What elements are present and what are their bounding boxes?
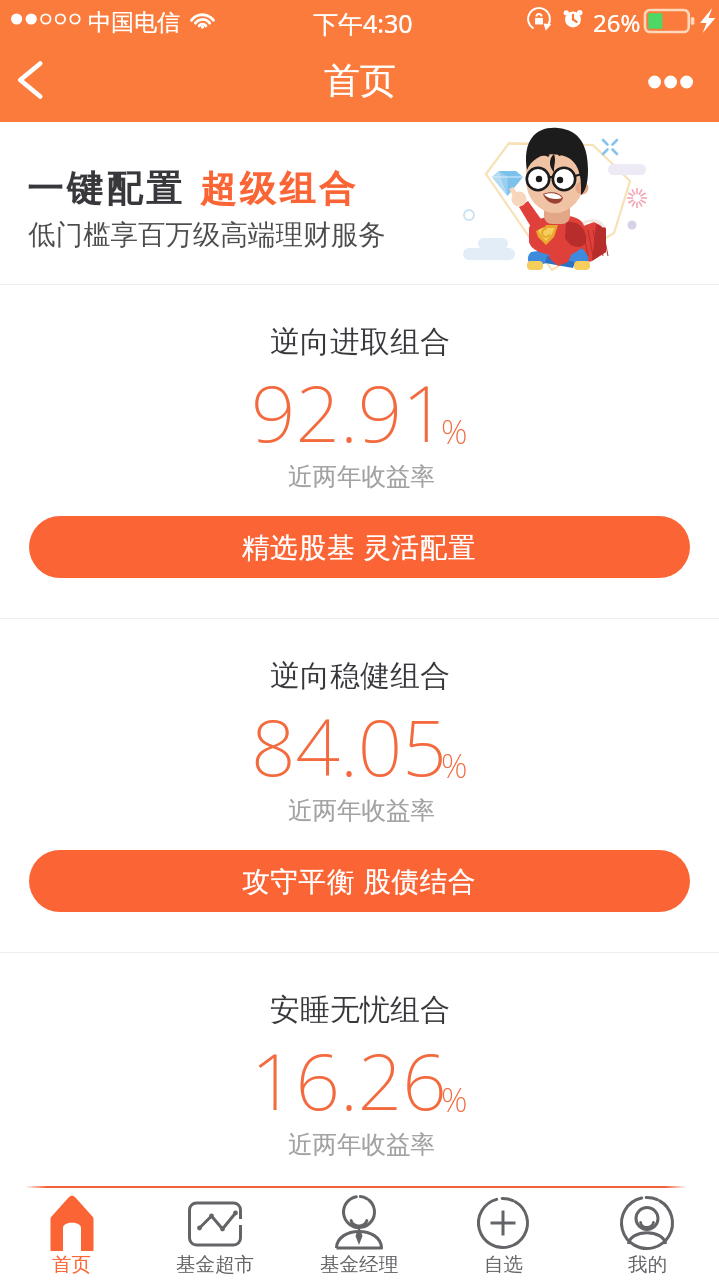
staticText: 84.05 [251, 693, 447, 799]
staticText: 基金经理 [320, 1252, 398, 1277]
button[interactable]: 基金经理 [287, 1188, 431, 1280]
staticText: 首页 [324, 58, 396, 103]
button[interactable]: 自选 [431, 1188, 575, 1280]
staticText: 自选 [484, 1252, 523, 1277]
staticText: 中国电信 [88, 8, 180, 37]
staticText: 超级组合 [200, 166, 359, 211]
staticText: 精选股基 灵活配置 [242, 528, 477, 566]
staticText: 安睡无忧组合 [270, 991, 450, 1029]
button[interactable]: 返回 [0, 42, 62, 122]
staticText: % [441, 743, 468, 788]
staticText: 16.26 [251, 1027, 447, 1133]
button[interactable]: 首页 [0, 1188, 143, 1280]
staticText: 攻守平衡 股债结合 [242, 862, 477, 900]
button[interactable]: 攻守平衡 股债结合 [29, 850, 690, 912]
staticText: 近两年收益率 [288, 795, 435, 826]
staticText: 近两年收益率 [288, 461, 435, 492]
staticText: 下午4:30 [313, 6, 413, 40]
button[interactable]: 精选股基 灵活配置 [29, 516, 690, 578]
button[interactable]: 基金超市 [143, 1188, 287, 1280]
staticText: % [441, 1077, 468, 1122]
staticText: 首页 [52, 1252, 91, 1277]
staticText: 92.91 [251, 359, 447, 465]
button[interactable]: 我的 [575, 1188, 719, 1280]
button[interactable]: 一键配置 [0, 122, 719, 284]
staticText: 26% [593, 6, 641, 39]
staticText: 一键配置 [27, 166, 186, 211]
staticText: 逆向进取组合 [270, 323, 450, 361]
staticText: 逆向稳健组合 [270, 657, 450, 695]
staticText: 基金超市 [176, 1252, 254, 1277]
staticText: % [441, 409, 468, 454]
staticText: 低门槛享百万级高端理财服务 [28, 218, 386, 253]
button[interactable]: 更多 [639, 42, 719, 122]
staticText: 近两年收益率 [288, 1129, 435, 1160]
staticText: 我的 [628, 1252, 667, 1277]
